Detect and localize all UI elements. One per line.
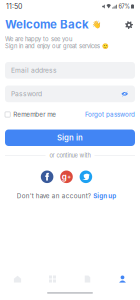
button[interactable]: Show password xyxy=(120,90,129,98)
staticText: Password xyxy=(11,90,42,98)
button[interactable]: Profile xyxy=(105,271,140,287)
staticText: Welcome Back xyxy=(5,17,89,31)
staticText: Don't have an account? xyxy=(17,192,91,200)
button[interactable]: Don't have an account? xyxy=(0,192,133,200)
button[interactable]: Home xyxy=(0,271,35,287)
staticText: 🙂 xyxy=(101,43,108,49)
staticText: Sign in xyxy=(57,133,83,142)
button[interactable]: Continue with Google xyxy=(60,170,73,183)
button[interactable]: Documents xyxy=(70,271,105,287)
button[interactable]: Sign in xyxy=(5,129,135,146)
button[interactable]: Dashboard xyxy=(35,271,70,287)
button[interactable]: Forgot password xyxy=(85,111,135,118)
staticText: 11:50 xyxy=(6,2,22,11)
staticText: 67% xyxy=(118,3,129,10)
button[interactable]: Continue with Twitter xyxy=(80,170,92,183)
button[interactable]: Settings xyxy=(123,19,135,31)
staticText: Email address xyxy=(11,66,57,74)
staticText: Sign in and enjoy our great services xyxy=(5,42,100,50)
staticText: Forgot password xyxy=(85,111,135,118)
staticText: or continue with xyxy=(49,152,90,159)
staticText: We are happy to see you xyxy=(5,35,72,43)
staticText: + xyxy=(67,173,71,180)
staticText: Remember me xyxy=(13,111,56,118)
staticText: g xyxy=(62,172,67,182)
staticText: Sign up xyxy=(93,192,116,200)
button[interactable]: Continue with Facebook xyxy=(41,170,53,183)
staticText: 👋 xyxy=(92,20,101,29)
button[interactable]: Remember me xyxy=(5,111,56,118)
